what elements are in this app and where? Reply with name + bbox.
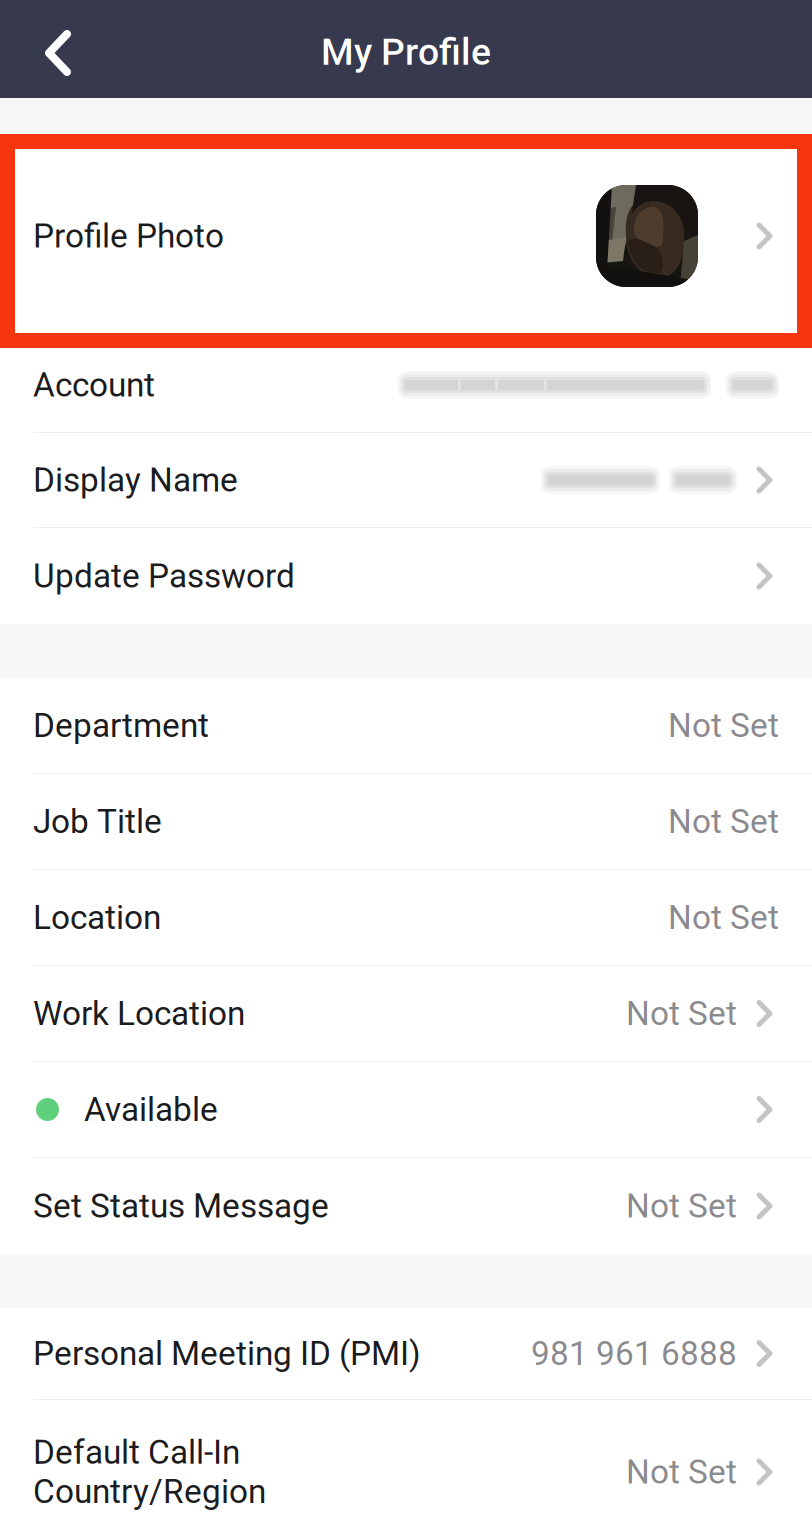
staticText: Job Title: [33, 802, 162, 841]
staticText: Account: [33, 365, 155, 405]
staticText: Available: [84, 1090, 218, 1129]
staticText: Personal Meeting ID (PMI): [33, 1334, 421, 1373]
staticText: Not Set: [626, 1186, 737, 1226]
button[interactable]: Profile Photo: [0, 134, 812, 338]
button[interactable]: Job Title: [0, 774, 812, 870]
button[interactable]: Department: [0, 678, 812, 774]
button[interactable]: Work Location: [0, 966, 812, 1062]
button[interactable]: Available: [0, 1062, 812, 1158]
staticText: Not Set: [668, 898, 779, 937]
staticText: 981 961 6888: [531, 1334, 737, 1373]
staticText: Set Status Message: [33, 1186, 329, 1226]
staticText: Default Call-In Country/Region: [33, 1433, 266, 1511]
staticText: Not Set: [626, 994, 737, 1033]
button[interactable]: Default Call-In Country/Region: [0, 1400, 812, 1536]
button[interactable]: Update Password: [0, 528, 812, 624]
staticText: Department: [33, 706, 209, 745]
button[interactable]: Display Name: [0, 433, 812, 528]
staticText: Work Location: [33, 994, 245, 1033]
staticText: Profile Photo: [33, 216, 224, 256]
staticText: Not Set: [668, 706, 779, 745]
button[interactable]: Account: [0, 338, 812, 433]
button[interactable]: Personal Meeting ID (PMI): [0, 1308, 812, 1400]
staticText: Display Name: [33, 460, 238, 500]
button[interactable]: Set Status Message: [0, 1158, 812, 1254]
staticText: My Profile: [321, 30, 491, 74]
button[interactable]: Location: [0, 870, 812, 966]
staticText: Location: [33, 898, 161, 937]
staticText: Not Set: [668, 802, 779, 841]
staticText: Not Set: [626, 1452, 737, 1492]
button[interactable]: Back: [0, 0, 96, 98]
staticText: Update Password: [33, 556, 295, 596]
